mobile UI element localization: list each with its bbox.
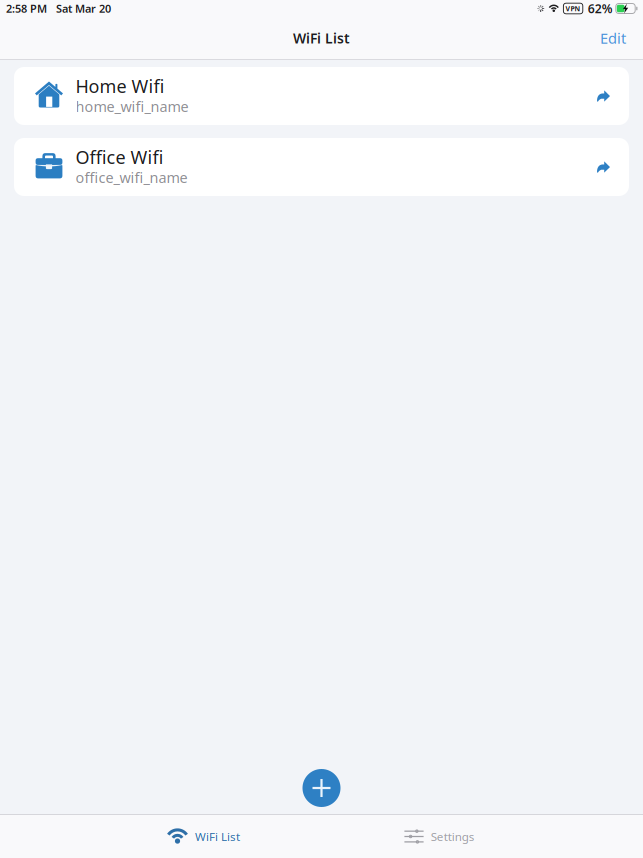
button[interactable]: Office Wifi	[14, 138, 629, 196]
staticText: Office Wifi	[75, 145, 163, 169]
staticText: WiFi List	[195, 829, 240, 844]
staticText: Sat Mar 20	[56, 1, 111, 16]
staticText: 62%	[588, 0, 613, 17]
staticText: home_wifi_name	[75, 97, 188, 116]
staticText: VPN	[566, 4, 581, 13]
button[interactable]: Add	[296, 763, 346, 813]
staticText: office_wifi_name	[75, 168, 187, 187]
button[interactable]: Edit	[583, 19, 643, 57]
staticText: 2:58 PM	[6, 1, 47, 16]
staticText: Edit	[600, 28, 626, 48]
staticText: Settings	[431, 829, 475, 844]
staticText: Home Wifi	[75, 74, 164, 98]
button[interactable]: WiFi List	[85, 815, 321, 858]
staticText: WiFi List	[293, 29, 350, 47]
button[interactable]: Settings	[321, 815, 557, 858]
button[interactable]: Home Wifi	[14, 67, 629, 125]
